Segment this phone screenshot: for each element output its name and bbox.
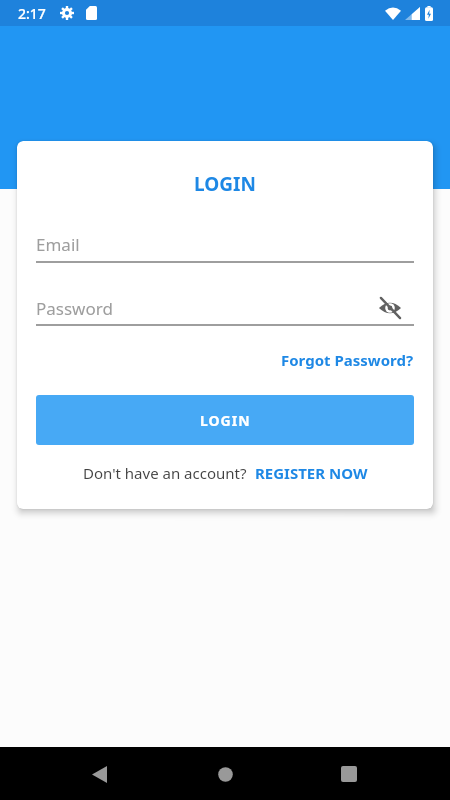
button[interactable]: LOGIN — [36, 395, 414, 445]
button[interactable] — [378, 296, 402, 320]
staticText: Email — [36, 233, 80, 256]
button[interactable]: REGISTER NOW — [255, 463, 368, 483]
button[interactable]: Forgot Password? — [281, 350, 414, 370]
staticText: 2:17 — [18, 4, 46, 23]
staticText: Password — [36, 297, 113, 320]
staticText: Don't have an account? — [83, 463, 247, 483]
staticText: LOGIN — [36, 171, 414, 197]
button[interactable] — [205, 754, 245, 794]
button[interactable] — [329, 754, 369, 794]
staticText: LOGIN — [200, 411, 251, 430]
button[interactable] — [79, 754, 119, 794]
